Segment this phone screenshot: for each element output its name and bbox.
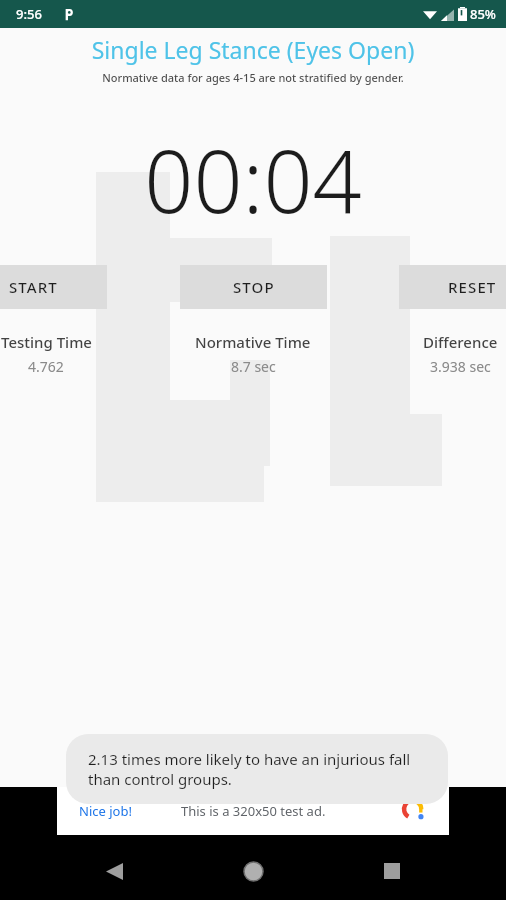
- staticText: 9:56: [16, 5, 42, 23]
- button[interactable]: RESET: [399, 265, 506, 309]
- button[interactable]: START: [0, 265, 107, 309]
- staticText: 2.13 times more likely to have an injuri…: [88, 749, 426, 789]
- staticText: Difference: [423, 332, 498, 352]
- staticText: Normative data for ages 4-15 are not str…: [0, 70, 506, 85]
- staticText: 8.7 sec: [231, 357, 276, 376]
- button[interactable]: Nice job!: [57, 787, 449, 835]
- staticText: Single Leg Stance (Eyes Open): [0, 34, 506, 65]
- staticText: This is a 320x50 test ad.: [181, 802, 326, 820]
- button[interactable]: Home: [231, 849, 275, 893]
- staticText: Normative Time: [195, 332, 311, 352]
- staticText: 85%: [470, 5, 496, 23]
- staticText: 4.762: [28, 357, 64, 376]
- staticText: 00:04: [0, 121, 506, 238]
- button[interactable]: STOP: [180, 265, 327, 309]
- staticText: Testing Time: [1, 332, 92, 352]
- staticText: STOP: [233, 277, 275, 297]
- button[interactable]: Recents: [370, 849, 414, 893]
- staticText: 3.938 sec: [430, 357, 491, 376]
- staticText: RESET: [448, 277, 497, 297]
- button[interactable]: Back: [92, 849, 136, 893]
- staticText: Nice job!: [79, 802, 132, 820]
- staticText: START: [9, 277, 58, 297]
